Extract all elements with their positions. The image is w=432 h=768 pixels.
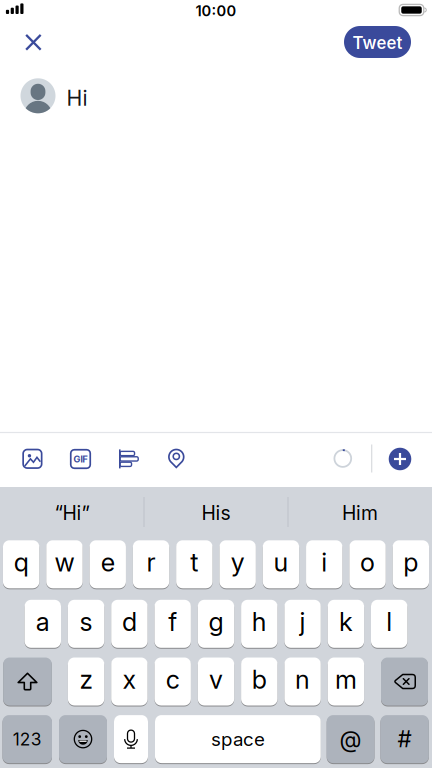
staticText: space [211, 728, 265, 750]
button[interactable]: s [68, 600, 104, 648]
staticText: l [386, 606, 392, 637]
staticText: j [300, 606, 306, 637]
button[interactable]: b [241, 657, 277, 705]
button[interactable]: Add another Tweet [389, 448, 411, 470]
button[interactable]: a [25, 600, 61, 648]
staticText: GIF [73, 453, 87, 465]
button[interactable]: y [219, 540, 256, 588]
button[interactable]: Shift [3, 657, 52, 705]
staticText: c [166, 664, 180, 695]
staticText: u [273, 547, 288, 578]
staticText: i [321, 547, 327, 578]
button[interactable]: z [68, 657, 104, 705]
button[interactable]: Emoji [59, 715, 107, 763]
button[interactable]: @ [327, 715, 374, 763]
staticText: w [54, 547, 74, 578]
staticText: @ [340, 725, 362, 753]
button[interactable]: His [146, 490, 286, 535]
staticText: o [360, 547, 375, 578]
button[interactable]: d [111, 600, 148, 648]
staticText: His [201, 501, 230, 525]
staticText: v [209, 664, 223, 695]
staticText: # [398, 725, 412, 753]
button[interactable]: c [154, 657, 191, 705]
button[interactable]: Add location [168, 449, 185, 468]
button[interactable]: v [198, 657, 234, 705]
button[interactable]: r [133, 540, 169, 588]
button[interactable]: k [328, 600, 364, 648]
staticText: m [335, 664, 357, 695]
button[interactable]: space [155, 715, 321, 763]
staticText: h [252, 606, 267, 637]
button[interactable]: 123 [2, 715, 52, 763]
staticText: Hi [66, 85, 87, 111]
button[interactable]: n [284, 657, 321, 705]
staticText: p [403, 547, 418, 578]
button[interactable]: q [3, 540, 39, 588]
button[interactable]: x [111, 657, 148, 705]
button[interactable]: f [154, 600, 191, 648]
button[interactable]: g [198, 600, 234, 648]
button[interactable]: Add GIF [71, 450, 90, 468]
button[interactable]: Delete [381, 657, 428, 705]
button[interactable]: Him [290, 490, 430, 535]
staticText: r [147, 547, 156, 578]
staticText: f [168, 606, 177, 637]
button[interactable]: u [263, 540, 299, 588]
button[interactable]: e [90, 540, 126, 588]
button[interactable]: m [328, 657, 364, 705]
staticText: t [190, 547, 198, 578]
staticText: z [80, 664, 93, 695]
staticText: Tweet [352, 33, 402, 53]
button[interactable]: p [393, 540, 429, 588]
staticText: q [14, 547, 29, 578]
staticText: n [295, 664, 310, 695]
staticText: d [122, 606, 137, 637]
staticText: x [122, 664, 136, 695]
staticText: b [252, 664, 267, 695]
button[interactable]: j [284, 600, 321, 648]
button[interactable]: h [241, 600, 277, 648]
button[interactable]: w [46, 540, 83, 588]
staticText: Him [342, 501, 378, 525]
staticText: a [36, 606, 50, 637]
button[interactable]: t [176, 540, 213, 588]
button[interactable]: i [306, 540, 342, 588]
button[interactable]: “Hi” [2, 490, 142, 535]
button[interactable]: Dictate [114, 715, 148, 763]
button[interactable]: l [371, 600, 407, 648]
staticText: k [339, 606, 353, 637]
staticText: 10:00 [195, 2, 236, 20]
button[interactable]: # [380, 715, 429, 763]
staticText: “Hi” [54, 501, 89, 525]
button[interactable]: Close [18, 27, 48, 57]
button[interactable]: o [349, 540, 386, 588]
staticText: s [80, 606, 93, 637]
staticText: 123 [13, 729, 42, 750]
staticText: y [231, 547, 245, 578]
button[interactable]: Tweet [344, 26, 411, 58]
button[interactable]: Add poll [119, 449, 139, 468]
staticText: g [208, 606, 223, 637]
button[interactable]: Add photo [23, 450, 42, 468]
staticText: e [101, 547, 115, 578]
